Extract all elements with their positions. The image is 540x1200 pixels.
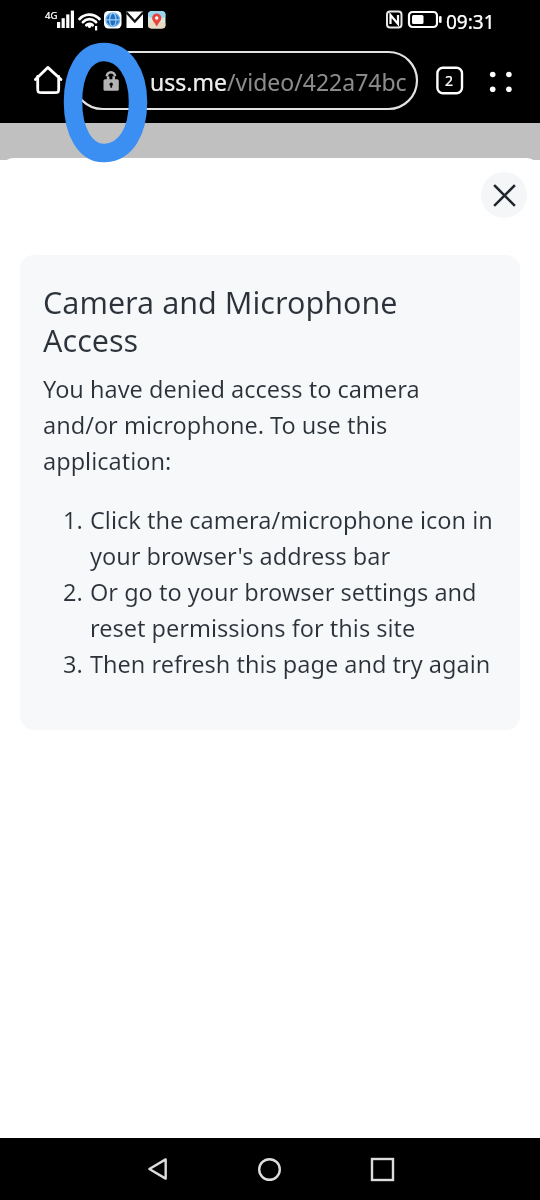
button[interactable]: Tab switcher, 2 tabs [431,62,468,99]
staticText: /video/422a74bc [227,66,407,97]
button[interactable]: Close [481,172,527,218]
staticText: Then refresh this page and try again [90,645,491,681]
staticText: 4G [45,9,58,22]
button[interactable]: Address bar, uss.me/video/422a74bc [74,52,417,109]
staticText: Click the camera/microphone icon in your… [90,501,513,573]
staticText: Or go to your browser settings and reset… [90,573,513,645]
button[interactable]: More options [480,62,520,102]
staticText: 2. [63,573,83,609]
staticText: Camera and Microphone Access [43,284,423,360]
staticText: 1. [63,501,83,537]
staticText: You have denied access to camera and/or … [43,370,433,478]
staticText: uss.me [150,66,227,97]
button[interactable]: Recent apps [356,1143,408,1195]
staticText: 3. [63,645,83,681]
staticText: 2 [445,71,454,90]
button[interactable]: Home [243,1143,295,1195]
button[interactable]: Home [28,60,68,100]
staticText: 09:31 [446,9,495,35]
button[interactable]: Back [132,1143,184,1195]
